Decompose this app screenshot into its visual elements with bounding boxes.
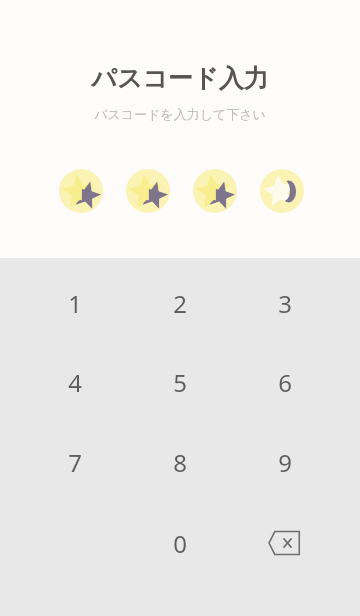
staticText: 7 — [68, 446, 82, 479]
button[interactable]: 1 — [15, 263, 135, 343]
button[interactable]: 2 — [120, 263, 240, 343]
button[interactable]: 5 — [120, 342, 240, 422]
staticText: 4 — [68, 366, 82, 399]
staticText: 0 — [173, 527, 187, 560]
staticText: 6 — [278, 366, 292, 399]
button[interactable]: 8 — [120, 422, 240, 502]
button[interactable]: 9 — [225, 422, 345, 502]
staticText: パスコード入力 — [91, 63, 269, 94]
button[interactable]: 7 — [15, 422, 135, 502]
button[interactable]: 3 — [225, 263, 345, 343]
staticText: 2 — [173, 287, 187, 320]
staticText: 1 — [68, 287, 82, 320]
staticText: パスコードを入力して下さい — [94, 106, 266, 122]
staticText: 8 — [173, 446, 187, 479]
button[interactable]: 6 — [225, 342, 345, 422]
staticText: 9 — [278, 446, 292, 479]
staticText: 5 — [173, 366, 187, 399]
button[interactable]: 4 — [15, 342, 135, 422]
staticText: 3 — [278, 287, 292, 320]
button[interactable]: 0 — [120, 503, 240, 583]
button[interactable]: Delete — [225, 503, 345, 583]
